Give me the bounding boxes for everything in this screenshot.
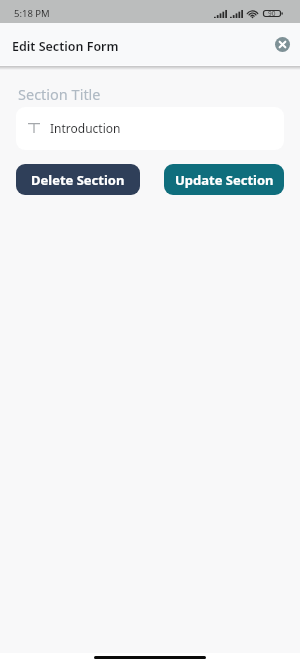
staticText: 90 — [268, 9, 276, 18]
staticText: Update Section — [175, 171, 274, 189]
staticText: Delete Section — [31, 171, 125, 189]
staticText: Introduction — [50, 120, 121, 136]
button[interactable]: Close — [271, 33, 293, 55]
button[interactable]: Introduction — [16, 107, 284, 150]
button[interactable]: Delete Section — [16, 164, 140, 195]
staticText: 5:18 PM — [14, 7, 50, 20]
staticText: Section Title — [18, 84, 101, 104]
staticText: Edit Section Form — [12, 38, 119, 55]
button[interactable]: Update Section — [164, 164, 284, 195]
